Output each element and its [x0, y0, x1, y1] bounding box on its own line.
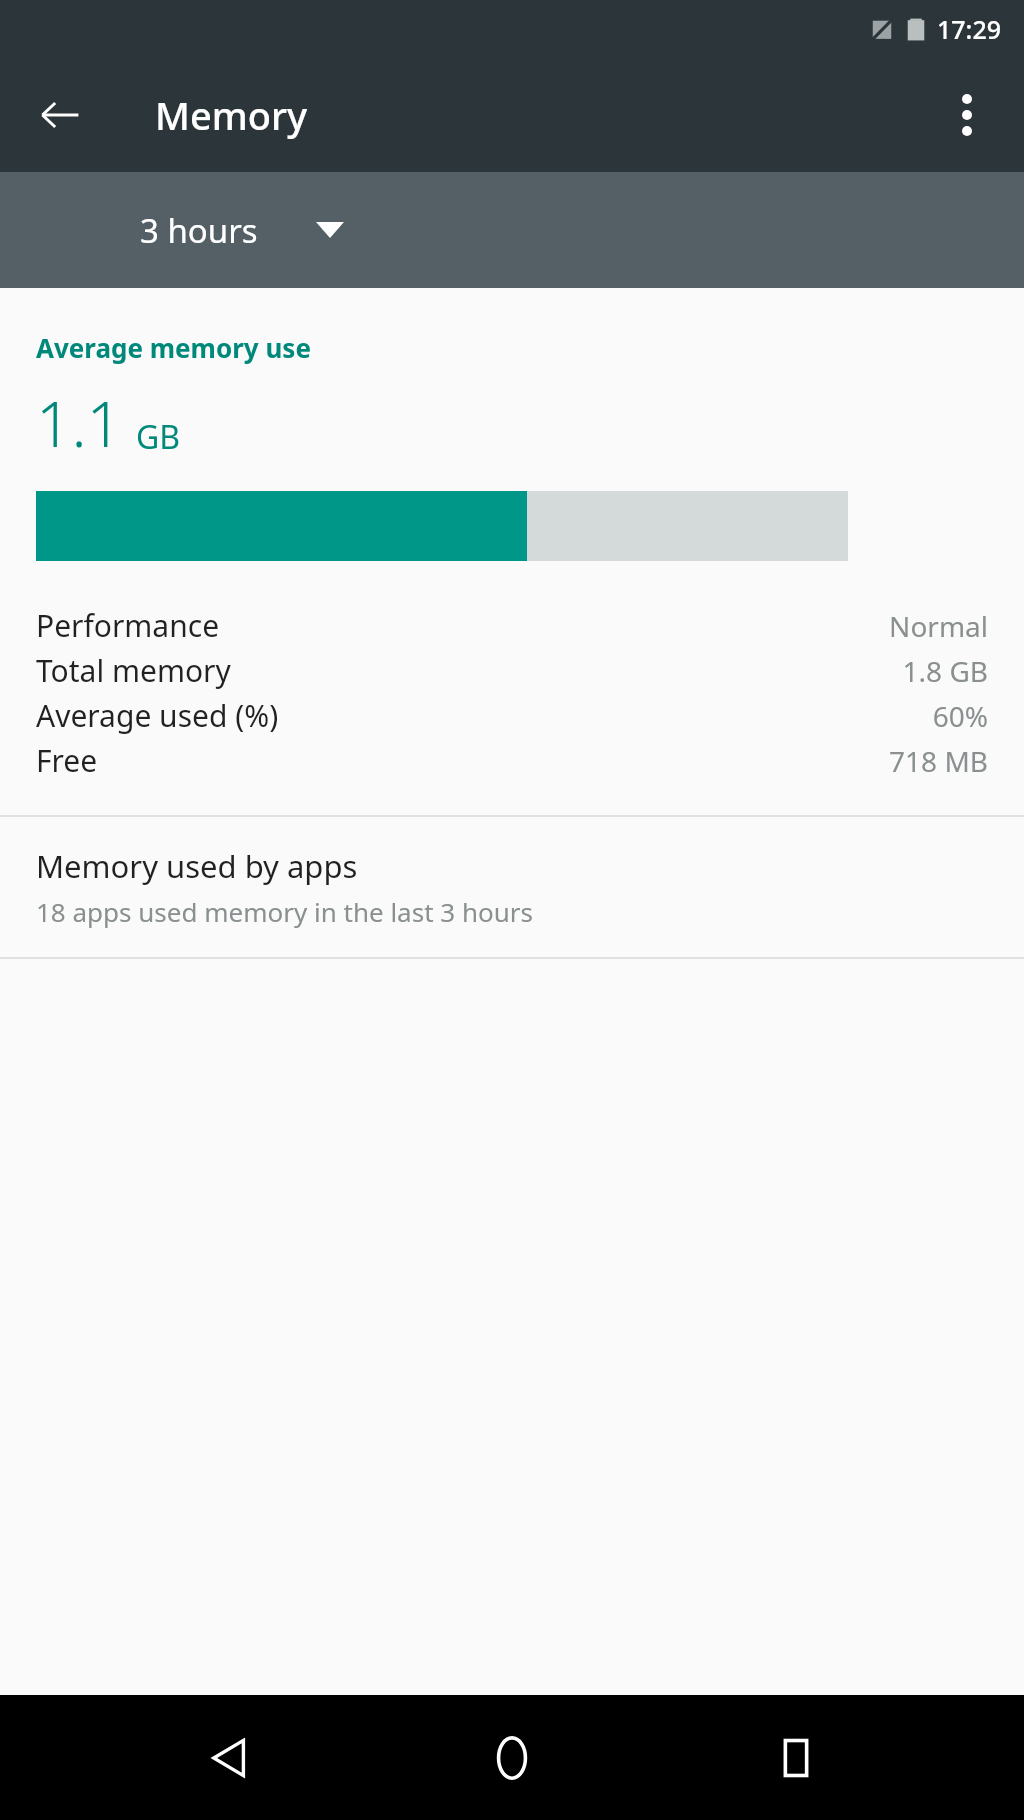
button[interactable]: Total memory [0, 648, 1024, 693]
staticText: Average used (%) [36, 695, 279, 736]
button[interactable]: Free [0, 738, 1024, 783]
staticText: 3 hours [140, 208, 258, 253]
staticText: 718 MB [889, 742, 988, 780]
staticText: GB [136, 415, 181, 459]
button[interactable]: Back [18, 73, 102, 157]
staticText: Total memory [36, 650, 231, 691]
staticText: Average memory use [36, 330, 311, 365]
button[interactable]: 3 hours [140, 190, 344, 270]
button[interactable]: Performance [0, 603, 1024, 648]
staticText: 1.1 [36, 381, 122, 465]
staticText: Performance [36, 605, 220, 646]
button[interactable]: More options [930, 78, 1004, 152]
staticText: 18 apps used memory in the last 3 hours [36, 894, 533, 929]
button[interactable]: Memory used by apps [0, 817, 1024, 957]
staticText: Memory [155, 89, 308, 141]
staticText: 60% [932, 697, 988, 735]
staticText: 1.8 GB [902, 652, 988, 690]
staticText: 17:29 [937, 12, 1002, 46]
button[interactable]: Back [174, 1703, 284, 1813]
button[interactable]: Home [457, 1703, 567, 1813]
staticText: Normal [889, 607, 988, 645]
button[interactable]: Average used (%) [0, 693, 1024, 738]
button[interactable]: Recent apps [741, 1703, 851, 1813]
staticText: Free [36, 740, 98, 781]
staticText: Memory used by apps [36, 845, 358, 887]
